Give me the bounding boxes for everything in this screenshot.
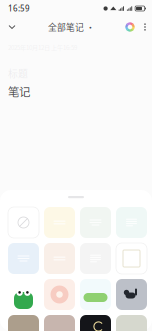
button[interactable]: Note template: [44, 243, 75, 274]
button[interactable]: Note template: [8, 243, 39, 274]
button[interactable]: Collapse: [2, 18, 22, 36]
button[interactable]: Night sticker: [80, 315, 111, 331]
button[interactable]: Note colour: [121, 18, 139, 36]
button[interactable]: Note template: [44, 315, 75, 331]
button[interactable]: Note template: [116, 243, 147, 274]
button[interactable]: Note template: [8, 207, 39, 238]
button[interactable]: Cat sticker: [116, 279, 147, 310]
button[interactable]: Note template: [8, 315, 39, 331]
button[interactable]: Note template: [44, 207, 75, 238]
staticText: 全部笔记 ·: [48, 21, 95, 33]
button[interactable]: Note template: [116, 207, 147, 238]
button[interactable]: Frog sticker: [8, 279, 39, 310]
staticText: 16:59: [8, 3, 30, 14]
button[interactable]: More options: [139, 18, 151, 36]
button[interactable]: Donut sticker: [44, 279, 75, 310]
button[interactable]: Note template: [116, 315, 147, 331]
button[interactable]: Landscape sticker: [80, 279, 111, 310]
staticText: 笔记: [8, 83, 30, 100]
staticText: 标题: [8, 66, 28, 80]
